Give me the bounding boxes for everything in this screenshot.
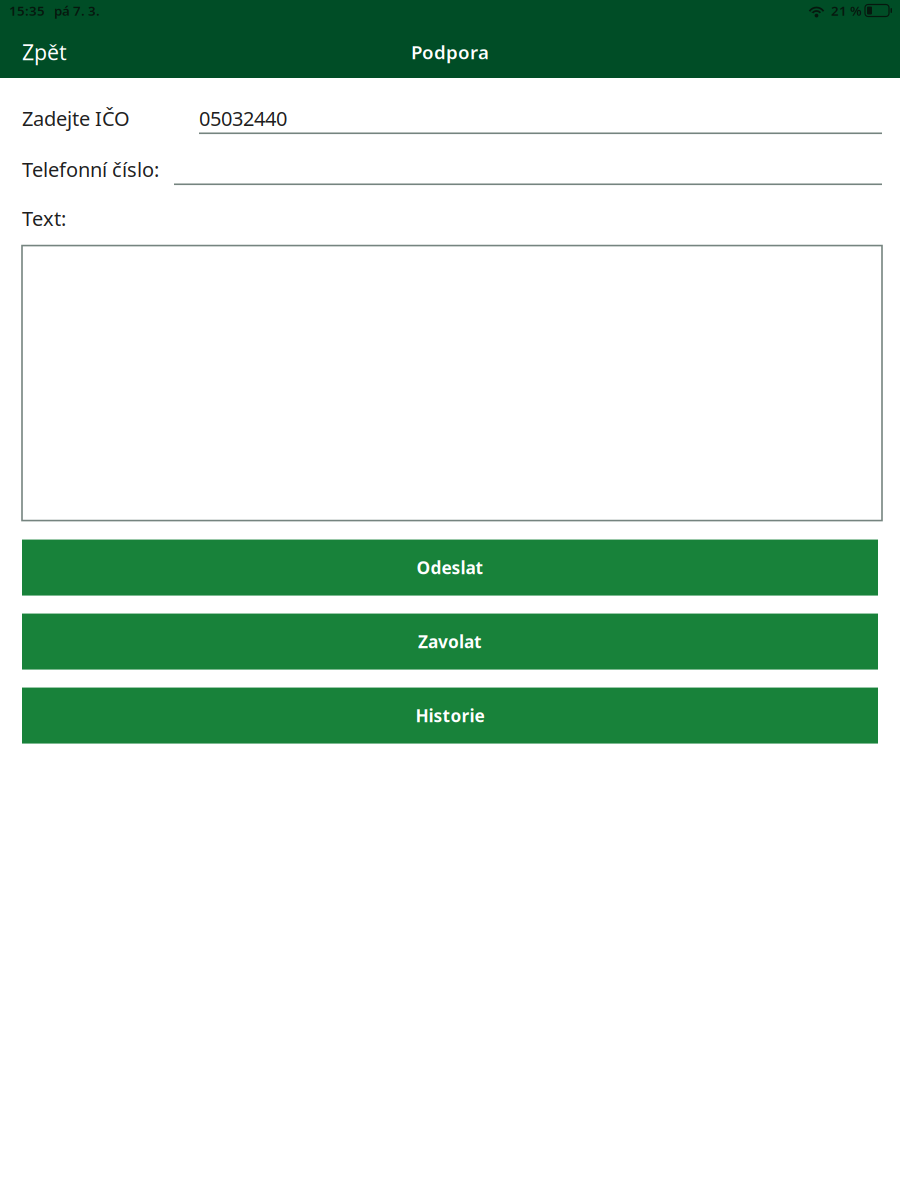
button[interactable]: Historie [22, 688, 878, 744]
staticText: 21 % [831, 2, 862, 19]
staticText: Historie [415, 704, 484, 727]
button[interactable]: Zadejte IČO [199, 98, 882, 134]
button[interactable]: Zavolat [22, 614, 878, 670]
button[interactable]: Odeslat [22, 540, 878, 596]
staticText: Podpora [411, 40, 489, 64]
staticText: Odeslat [416, 556, 483, 579]
staticText: Text: [22, 205, 66, 232]
button[interactable]: Text [22, 246, 882, 521]
button[interactable]: Telefonní číslo [174, 149, 882, 185]
button[interactable]: Zpět [0, 28, 83, 76]
staticText: Zpět [22, 38, 67, 66]
staticText: Zavolat [418, 630, 482, 653]
staticText: Telefonní číslo: [22, 156, 159, 183]
staticText: 15:35 pá 7. 3. [9, 2, 100, 19]
staticText: 05032440 [199, 105, 287, 131]
staticText: Zadejte IČO [22, 105, 130, 132]
